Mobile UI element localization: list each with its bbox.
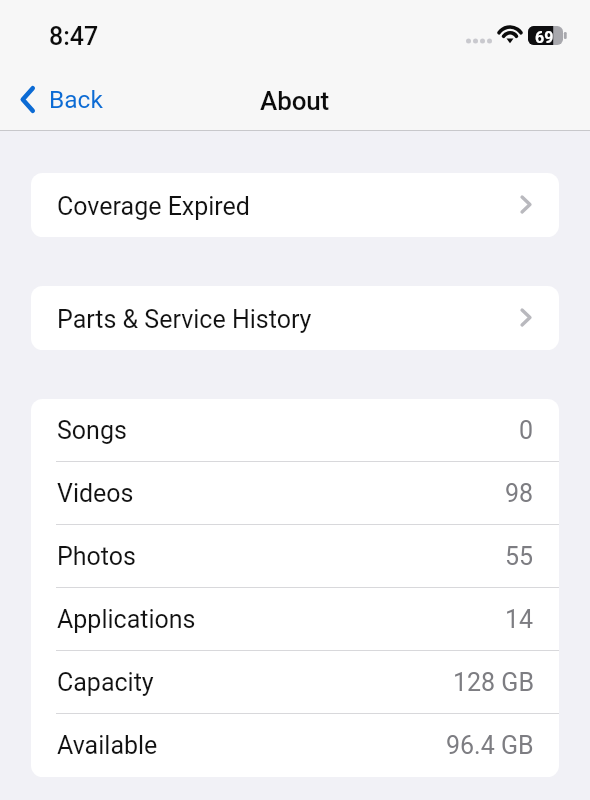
other: Open <box>520 308 532 327</box>
button[interactable]: Videos <box>31 462 559 525</box>
staticText: About <box>260 86 330 116</box>
staticText: 8:47 <box>49 22 99 51</box>
button[interactable]: Applications <box>31 588 559 651</box>
button[interactable]: Songs <box>31 399 559 462</box>
button[interactable]: Available <box>31 714 559 777</box>
staticText: 0 <box>519 416 534 445</box>
staticText: Back <box>49 85 103 114</box>
staticText: 128 GB <box>453 668 534 697</box>
staticText: Capacity <box>57 668 154 697</box>
staticText: Parts & Service History <box>57 305 312 334</box>
button[interactable]: Back <box>0 79 119 120</box>
staticText: Videos <box>57 479 134 508</box>
staticText: 98 <box>505 479 534 508</box>
button[interactable]: Photos <box>31 525 559 588</box>
staticText: 14 <box>505 605 534 634</box>
staticText: 69 <box>535 28 554 47</box>
staticText: Available <box>57 731 158 760</box>
button[interactable]: Capacity <box>31 651 559 714</box>
staticText: 55 <box>505 542 534 571</box>
staticText: Photos <box>57 542 136 571</box>
button[interactable]: Coverage Expired <box>31 173 559 237</box>
button[interactable]: Parts & Service History <box>31 286 559 350</box>
other: Open <box>520 195 532 214</box>
staticText: Applications <box>57 605 196 634</box>
staticText: 96.4 GB <box>446 731 534 760</box>
staticText: Coverage Expired <box>57 192 250 221</box>
staticText: Songs <box>57 416 127 445</box>
